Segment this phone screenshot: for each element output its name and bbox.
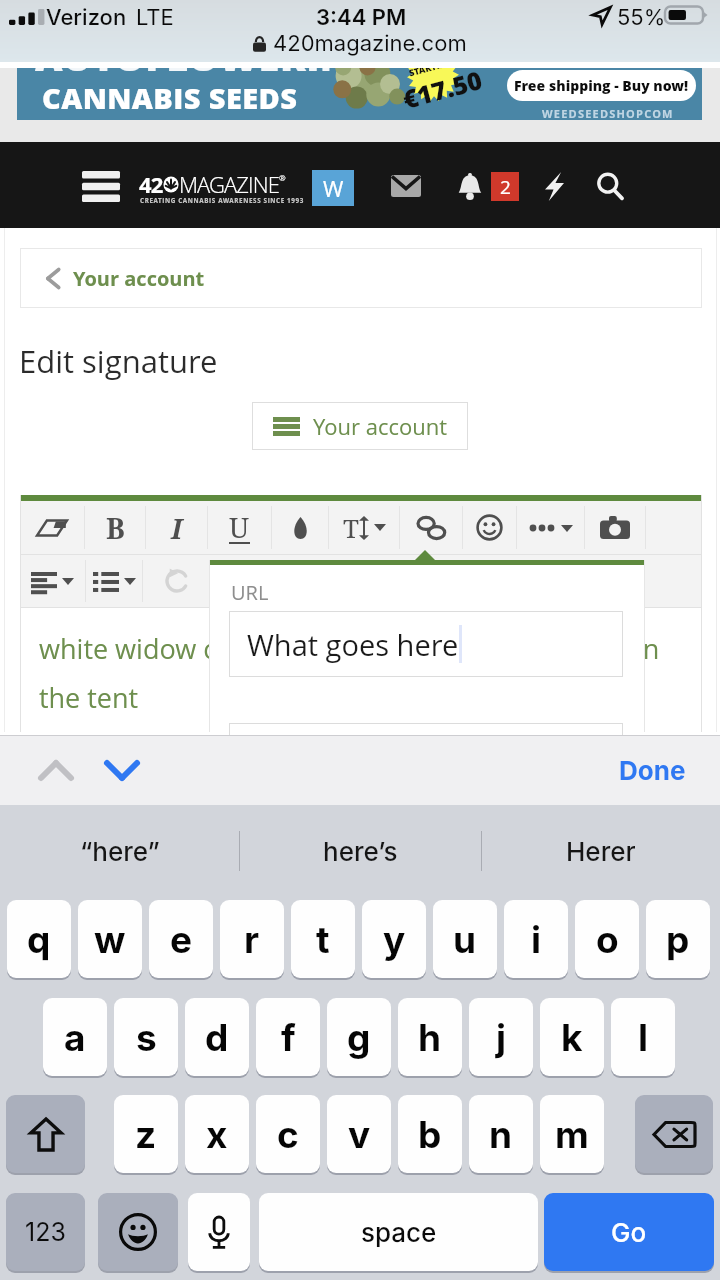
button[interactable]: j — [469, 998, 533, 1076]
button[interactable] — [517, 501, 584, 554]
button[interactable]: i — [504, 900, 568, 978]
staticText: white widow cannabis autoflower plants g… — [39, 630, 660, 667]
staticText: b — [418, 1112, 442, 1157]
button[interactable]: b — [398, 1095, 462, 1173]
staticText: v — [348, 1112, 371, 1157]
staticText: MAGAZINE — [179, 169, 279, 199]
button[interactable]: Inbox — [380, 161, 432, 211]
staticText: s — [136, 1015, 157, 1060]
staticText: a — [64, 1015, 86, 1060]
staticText: STARTING AT — [407, 68, 468, 78]
staticText: Done — [619, 755, 686, 786]
button[interactable]: o — [575, 900, 639, 978]
staticText: 42 — [139, 169, 163, 199]
staticText: “here” — [80, 836, 160, 867]
button[interactable]: Search — [586, 161, 634, 211]
button[interactable]: f — [256, 998, 320, 1076]
staticText: e — [170, 917, 193, 962]
button[interactable]: U — [208, 501, 271, 554]
button[interactable]: d — [185, 998, 249, 1076]
button[interactable]: p — [646, 900, 710, 978]
staticText: 123 — [25, 1217, 66, 1247]
staticText: 2 — [500, 174, 511, 200]
staticText: u — [453, 917, 477, 962]
button[interactable]: 123 — [6, 1193, 85, 1271]
button[interactable]: Activity — [530, 161, 578, 211]
staticText: CANNABIS SEEDS — [42, 78, 298, 117]
button[interactable]: u — [433, 900, 497, 978]
staticText: ® — [279, 172, 286, 183]
staticText: q — [27, 917, 51, 962]
staticText: l — [638, 1015, 649, 1060]
staticText: URL — [231, 579, 269, 606]
button[interactable] — [400, 501, 462, 554]
staticText: p — [666, 917, 690, 962]
button[interactable] — [86, 555, 142, 607]
staticText: g — [347, 1015, 371, 1060]
staticText: c — [277, 1112, 299, 1157]
button[interactable]: here’s — [240, 805, 481, 898]
button[interactable]: Menu — [72, 161, 130, 211]
button[interactable]: Your account — [20, 248, 702, 308]
button[interactable]: k — [540, 998, 604, 1076]
staticText: What goes here — [247, 625, 459, 664]
button[interactable]: Dictation — [188, 1193, 250, 1271]
staticText: AUTOFLOWERING — [35, 68, 381, 82]
staticText: 55% — [617, 4, 666, 31]
button[interactable]: I — [146, 501, 207, 554]
staticText: Your account — [73, 265, 205, 292]
button[interactable]: Emoji — [98, 1193, 178, 1271]
button[interactable] — [272, 501, 328, 554]
button[interactable]: 42 — [139, 169, 319, 208]
button[interactable] — [463, 501, 516, 554]
staticText: r — [244, 917, 260, 962]
staticText: m — [555, 1112, 589, 1157]
button[interactable]: Done — [606, 743, 698, 797]
button[interactable]: s — [114, 998, 178, 1076]
staticText: n — [489, 1112, 513, 1157]
button[interactable]: Alerts — [446, 161, 494, 211]
button[interactable]: m — [540, 1095, 604, 1173]
button[interactable]: y — [362, 900, 426, 978]
button[interactable]: e — [149, 900, 213, 978]
staticText: W — [323, 173, 344, 203]
staticText: space — [361, 1217, 437, 1248]
button[interactable]: x — [185, 1095, 249, 1173]
button[interactable]: q — [7, 900, 71, 978]
button[interactable]: Go — [544, 1193, 714, 1271]
button[interactable]: 2 — [491, 172, 519, 201]
button[interactable]: Your account — [252, 402, 468, 450]
button[interactable]: space — [259, 1193, 538, 1271]
staticText: x — [206, 1112, 228, 1157]
button[interactable]: W — [312, 170, 354, 206]
button[interactable]: w — [78, 900, 142, 978]
button[interactable] — [20, 555, 85, 607]
staticText: i — [531, 917, 542, 962]
staticText: the tent — [39, 679, 139, 716]
button[interactable] — [20, 501, 84, 554]
button[interactable]: Herer — [482, 805, 720, 898]
button[interactable]: l — [611, 998, 675, 1076]
staticText: o — [596, 917, 619, 962]
button[interactable]: Key — [635, 1095, 713, 1173]
button[interactable]: z — [114, 1095, 178, 1173]
staticText: h — [418, 1015, 442, 1060]
button[interactable] — [585, 501, 645, 554]
staticText: CREATING CANNABIS AWARENESS SINCE 1993 — [140, 196, 304, 205]
button[interactable]: “here” — [0, 805, 239, 898]
button[interactable]: B — [85, 501, 145, 554]
button[interactable]: a — [43, 998, 107, 1076]
button[interactable]: Previous field — [28, 743, 84, 797]
button[interactable] — [143, 555, 211, 607]
button[interactable]: g — [327, 998, 391, 1076]
button[interactable]: n — [469, 1095, 533, 1173]
button[interactable]: c — [256, 1095, 320, 1173]
button[interactable]: v — [327, 1095, 391, 1173]
button[interactable]: T — [329, 501, 399, 554]
button[interactable]: h — [398, 998, 462, 1076]
button[interactable]: r — [220, 900, 284, 978]
button[interactable]: Next field — [94, 743, 150, 797]
staticText: k — [561, 1015, 583, 1060]
button[interactable]: Key — [6, 1095, 85, 1173]
button[interactable]: t — [291, 900, 355, 978]
